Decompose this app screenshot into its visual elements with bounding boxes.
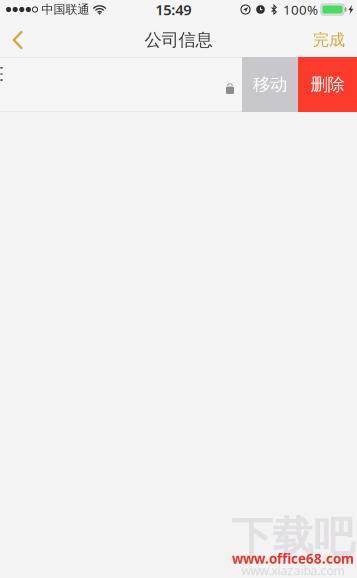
staticText: 完成	[313, 30, 345, 50]
staticText: 下载吧	[231, 512, 354, 562]
button[interactable]: 完成	[299, 19, 357, 57]
staticText: 15:49	[155, 0, 191, 19]
staticText: 删除	[310, 74, 344, 95]
button[interactable]: 删除	[298, 57, 357, 112]
staticText: 100%	[283, 1, 318, 18]
staticText: www.xiazaiba.com	[241, 562, 344, 578]
staticText: 中国联通	[42, 2, 90, 17]
staticText: 移动	[253, 74, 287, 95]
staticText: 公司信息	[144, 29, 212, 51]
staticText: www.office68.com	[232, 550, 354, 567]
button[interactable]: 移动	[242, 57, 298, 112]
button[interactable]: Back	[0, 19, 38, 57]
